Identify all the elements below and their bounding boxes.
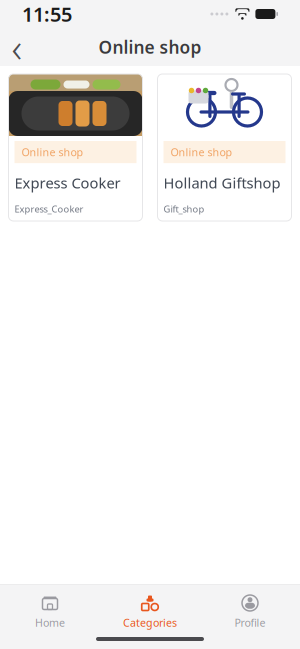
button[interactable]: Profile: [200, 592, 300, 632]
staticText: Gift_shop: [163, 203, 204, 215]
staticText: 11:55: [22, 1, 72, 27]
button[interactable]: Online shop: [8, 74, 142, 221]
button[interactable]: Back: [0, 28, 34, 66]
button[interactable]: Online shop: [157, 74, 291, 221]
staticText: ‹: [11, 20, 22, 73]
staticText: Home: [35, 615, 65, 630]
staticText: Online shop: [170, 145, 232, 159]
staticText: Holland Giftshop: [163, 173, 280, 193]
staticText: Online shop: [21, 145, 83, 159]
button[interactable]: Categories: [100, 592, 200, 632]
staticText: Profile: [234, 615, 265, 630]
staticText: Categories: [123, 615, 177, 630]
staticText: Online shop: [98, 35, 201, 58]
button[interactable]: Home: [0, 592, 100, 632]
staticText: Express_Cooker: [14, 203, 83, 215]
staticText: Express Cooker: [14, 173, 120, 193]
